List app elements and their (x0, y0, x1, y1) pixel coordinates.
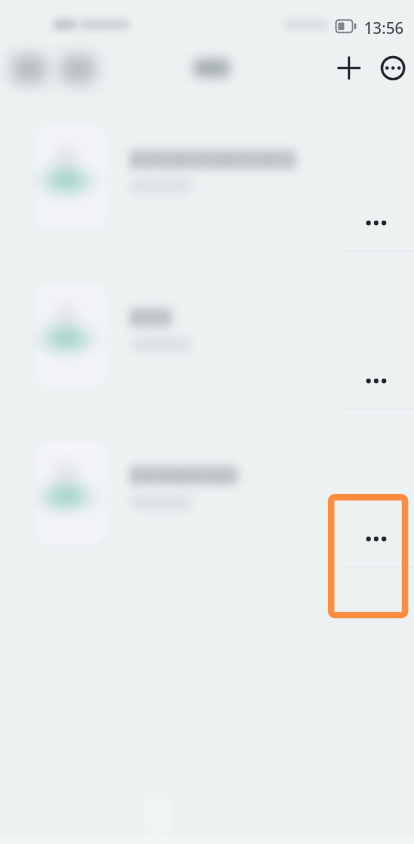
button[interactable]: More options (352, 199, 400, 247)
button[interactable]: More options (352, 515, 400, 563)
button[interactable]: More options (352, 357, 400, 405)
button[interactable]: More options (372, 47, 413, 88)
button[interactable]: Add (328, 47, 369, 88)
